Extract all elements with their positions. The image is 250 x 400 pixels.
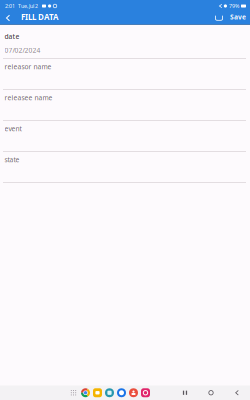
button[interactable]: event xyxy=(4,121,245,151)
button[interactable]: Instagram xyxy=(141,388,150,397)
button[interactable]: Save xyxy=(230,12,246,24)
staticText: Tue, Jul 2 xyxy=(18,2,38,10)
staticText: FILL DATA xyxy=(21,11,59,22)
button[interactable]: Save to drafts xyxy=(212,12,226,24)
button[interactable]: All apps xyxy=(69,388,78,397)
staticText: date xyxy=(4,32,19,41)
staticText: Save xyxy=(230,12,246,21)
button[interactable]: Home xyxy=(204,386,218,400)
button[interactable]: Recent apps xyxy=(178,386,192,400)
button[interactable]: Files xyxy=(93,388,102,397)
button[interactable]: releasor name xyxy=(4,59,245,89)
staticText: releasor name xyxy=(4,62,51,71)
staticText: 79% xyxy=(229,2,239,10)
staticText: releasee name xyxy=(4,93,52,102)
staticText: 2:01 xyxy=(5,2,15,10)
button[interactable]: date xyxy=(4,25,245,58)
button[interactable]: Back xyxy=(230,386,244,400)
button[interactable]: releasee name xyxy=(4,90,245,120)
staticText: state xyxy=(4,155,19,164)
button[interactable]: Messages xyxy=(117,388,126,397)
button[interactable]: Back xyxy=(2,12,14,24)
button[interactable]: state xyxy=(4,152,245,182)
button[interactable]: Calculator xyxy=(105,388,114,397)
button[interactable]: Contacts xyxy=(129,388,138,397)
staticText: event xyxy=(4,124,21,133)
staticText: 07/02/2024 xyxy=(4,46,40,55)
button[interactable]: Chrome xyxy=(81,388,90,397)
